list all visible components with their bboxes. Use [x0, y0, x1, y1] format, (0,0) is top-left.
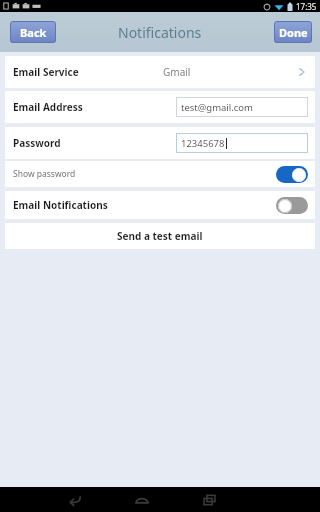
staticText: Back — [20, 25, 47, 40]
button[interactable]: Show password — [5, 161, 315, 187]
button[interactable]: Back — [10, 21, 56, 43]
staticText: Notifications — [118, 23, 202, 42]
button[interactable]: 12345678 — [176, 133, 308, 153]
staticText: Email Address — [13, 100, 83, 114]
button[interactable]: Email Service — [5, 56, 315, 88]
button[interactable]: Toggle off — [276, 197, 308, 214]
button[interactable]: Recents — [196, 487, 222, 512]
staticText: Done — [279, 25, 308, 40]
button[interactable]: Email Notifications — [5, 191, 315, 219]
staticText: Send a test email — [117, 229, 203, 243]
staticText: Gmail — [163, 65, 191, 79]
staticText: Show password — [13, 168, 76, 180]
button[interactable]: test@gmail.com — [176, 97, 308, 117]
button[interactable]: Send a test email — [5, 223, 315, 249]
staticText: Email Service — [13, 65, 79, 79]
button[interactable]: Done — [274, 21, 312, 43]
staticText: Password — [13, 136, 61, 150]
button[interactable]: Home — [129, 487, 155, 512]
staticText: 12345678 — [181, 137, 225, 150]
staticText: 17:35 — [296, 1, 317, 12]
staticText: Email Notifications — [13, 198, 108, 212]
button[interactable]: Toggle on — [276, 166, 308, 183]
staticText: test@gmail.com — [181, 101, 254, 114]
button[interactable]: Back — [62, 487, 88, 512]
